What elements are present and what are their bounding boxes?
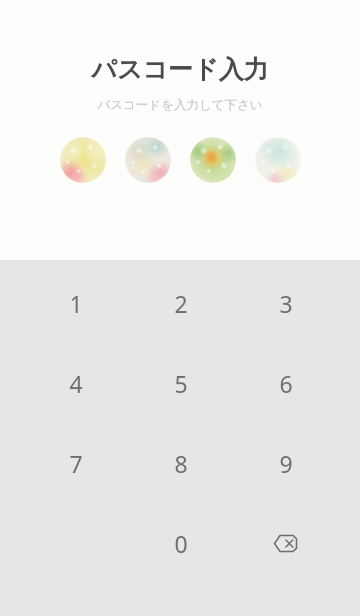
staticText: 1	[69, 288, 83, 319]
button[interactable]	[60, 137, 106, 183]
staticText: 8	[174, 448, 188, 479]
button[interactable]	[125, 137, 171, 183]
staticText: 5	[174, 368, 188, 399]
button[interactable]: 6	[233, 343, 338, 423]
button[interactable]: 0	[128, 503, 233, 583]
button[interactable]: 2	[128, 263, 233, 343]
button[interactable]: 9	[233, 423, 338, 503]
button[interactable]: 1	[23, 263, 128, 343]
button[interactable]: 4	[23, 343, 128, 423]
button[interactable]	[190, 137, 236, 183]
staticText: パスコード入力	[91, 54, 269, 85]
staticText: 0	[174, 528, 188, 559]
button[interactable]: 7	[23, 423, 128, 503]
button[interactable]	[255, 137, 301, 183]
staticText: 3	[279, 288, 293, 319]
button[interactable]: Delete	[233, 503, 338, 583]
button[interactable]: 3	[233, 263, 338, 343]
staticText: 6	[279, 368, 293, 399]
staticText: 9	[279, 448, 293, 479]
staticText: 2	[174, 288, 188, 319]
staticText: 4	[69, 368, 83, 399]
staticText: 7	[69, 448, 83, 479]
staticText: パスコードを入力して下さい	[97, 97, 263, 113]
button[interactable]: 8	[128, 423, 233, 503]
button[interactable]: 5	[128, 343, 233, 423]
